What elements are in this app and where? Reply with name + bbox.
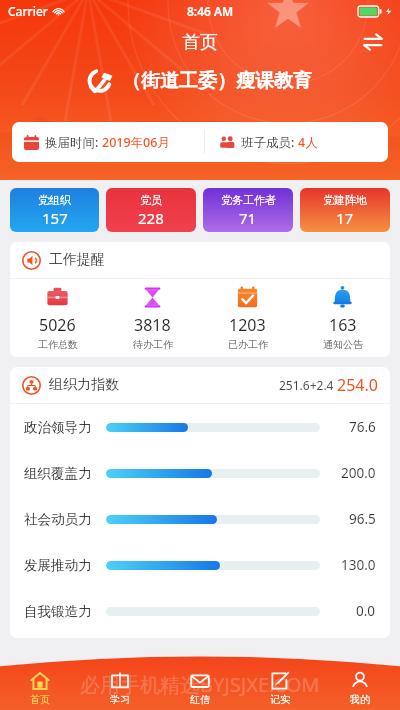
staticText: 待办工作 <box>133 338 173 351</box>
staticText: 政治领导力 <box>24 419 92 436</box>
staticText: 发展推动力 <box>24 557 92 574</box>
staticText: 自我锻造力 <box>24 603 92 620</box>
button[interactable]: 社会动员力 <box>24 496 376 542</box>
staticText: Carrier <box>8 3 48 19</box>
staticText: 党员 <box>140 193 162 207</box>
button[interactable]: 学习 <box>80 666 160 710</box>
staticText: 记实 <box>270 693 290 706</box>
staticText: 251.6+2.4 <box>279 377 337 393</box>
button[interactable]: 5026 <box>10 279 105 357</box>
button[interactable]: 政治领导力 <box>24 404 376 450</box>
button[interactable]: 163 <box>295 279 390 357</box>
staticText: 157 <box>42 208 68 228</box>
staticText: 学习 <box>110 693 130 706</box>
staticText: 换届时间: <box>45 134 102 151</box>
staticText: 76.6 <box>349 418 376 436</box>
staticText: 组织力指数 <box>49 376 119 394</box>
staticText: 130.0 <box>341 556 376 574</box>
staticText: 首页 <box>182 31 218 54</box>
staticText: （街道工委）瘦课教育 <box>122 69 312 93</box>
staticText: 已办工作 <box>228 338 268 351</box>
staticText: 3818 <box>134 314 171 336</box>
button[interactable]: 自我锻造力 <box>24 588 376 634</box>
staticText: 71 <box>239 208 257 228</box>
staticText: 5026 <box>39 314 76 336</box>
staticText: 96.5 <box>349 510 376 528</box>
staticText: 组织覆盖力 <box>24 465 92 482</box>
button[interactable]: 3818 <box>105 279 200 357</box>
staticText: 228 <box>138 208 164 228</box>
staticText: 班子成员: <box>241 134 298 151</box>
button[interactable]: 组织覆盖力 <box>24 450 376 496</box>
staticText: 红信 <box>190 693 210 706</box>
button[interactable]: 党务工作者 <box>203 188 293 232</box>
button[interactable]: 换届时间: <box>24 122 204 162</box>
button[interactable]: 发展推动力 <box>24 542 376 588</box>
button[interactable]: 1203 <box>200 279 295 357</box>
staticText: 通知公告 <box>323 338 363 351</box>
staticText: 首页 <box>30 693 50 706</box>
staticText: 4人 <box>298 134 318 151</box>
staticText: 254.0 <box>337 374 378 396</box>
button[interactable]: 班子成员: <box>219 122 388 162</box>
button[interactable]: 党建阵地 <box>300 188 390 232</box>
staticText: 社会动员力 <box>24 511 92 528</box>
staticText: 工作总数 <box>38 338 78 351</box>
staticText: 必用手机精选BYJSJXE.COM <box>80 671 320 698</box>
staticText: 党务工作者 <box>221 193 276 207</box>
button[interactable]: 党组织 <box>10 188 99 232</box>
staticText: 17 <box>336 208 354 228</box>
staticText: 8:46 AM <box>187 3 234 19</box>
staticText: 党建阵地 <box>323 193 367 207</box>
button[interactable]: Switch organization <box>356 25 390 59</box>
button[interactable]: 党员 <box>106 188 196 232</box>
staticText: 党组织 <box>38 193 71 207</box>
button[interactable]: 首页 <box>0 666 80 710</box>
staticText: 0.0 <box>356 602 376 620</box>
staticText: 2019年06月 <box>102 134 170 151</box>
staticText: 163 <box>329 314 357 336</box>
button[interactable]: 红信 <box>160 666 240 710</box>
button[interactable]: 我的 <box>320 666 400 710</box>
staticText: 200.0 <box>341 464 376 482</box>
button[interactable]: 记实 <box>240 666 320 710</box>
staticText: 1203 <box>229 314 266 336</box>
staticText: 工作提醒 <box>49 251 105 269</box>
staticText: 我的 <box>350 693 370 706</box>
